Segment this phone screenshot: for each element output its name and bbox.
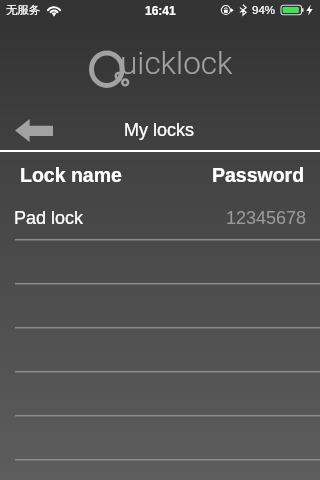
button[interactable] [0,416,320,460]
staticText: My locks [124,120,195,140]
button[interactable] [0,328,320,372]
staticText: Lock name [20,164,122,186]
button[interactable] [0,284,320,328]
staticText: 94% [252,4,276,17]
staticText: 无服务 [6,3,41,17]
button[interactable]: Back [6,111,62,149]
staticText: Password [212,164,305,186]
staticText: 12345678 [226,208,307,228]
button[interactable] [0,240,320,284]
staticText: uicklock [120,45,233,82]
button[interactable] [0,372,320,416]
staticText: 16:41 [145,4,176,17]
button[interactable]: Pad lock [0,196,320,240]
staticText: Pad lock [14,208,84,228]
